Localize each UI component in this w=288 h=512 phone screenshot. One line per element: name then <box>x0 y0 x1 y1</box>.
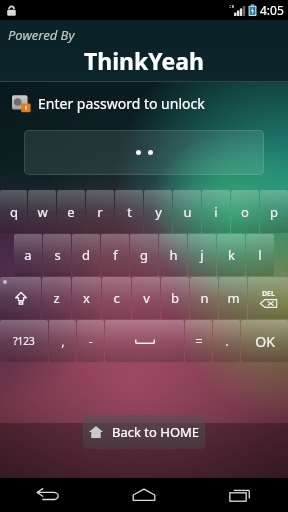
button[interactable]: Home <box>96 478 192 512</box>
button[interactable]: a <box>14 234 42 276</box>
button[interactable]: l <box>246 234 274 276</box>
staticText: p <box>270 203 278 221</box>
button[interactable] <box>0 277 41 319</box>
button[interactable]: j <box>188 234 216 276</box>
staticText: d <box>82 246 90 264</box>
button[interactable] <box>105 320 184 362</box>
button[interactable]: c <box>102 277 131 319</box>
button[interactable]: t <box>115 190 143 233</box>
staticText: v <box>143 289 150 307</box>
button[interactable]: s <box>43 234 71 276</box>
button[interactable]: Back to HOME <box>83 415 205 449</box>
staticText: = <box>195 332 203 350</box>
staticText: r <box>97 203 103 221</box>
button[interactable]: i <box>202 190 230 233</box>
button[interactable]: o <box>231 190 259 233</box>
staticText: n <box>200 289 209 307</box>
button[interactable]: v <box>132 277 160 319</box>
staticText: y <box>155 203 162 221</box>
button[interactable]: OK <box>241 320 288 362</box>
button[interactable]: b <box>161 277 189 319</box>
button[interactable]: p <box>260 190 288 233</box>
staticText: - <box>88 332 93 350</box>
button[interactable]: z <box>42 277 71 319</box>
staticText: t <box>127 203 132 221</box>
staticText: DEL <box>262 289 275 299</box>
button[interactable]: g <box>130 234 158 276</box>
button[interactable]: , <box>49 320 76 362</box>
button[interactable]: ?123 <box>0 320 48 362</box>
staticText: f <box>113 246 118 264</box>
staticText: i <box>214 203 218 221</box>
button[interactable]: k <box>217 234 245 276</box>
staticText: w <box>37 203 48 221</box>
staticText: . <box>225 332 229 350</box>
staticText: j <box>200 246 204 264</box>
staticText: u <box>183 203 192 221</box>
button[interactable]: - <box>77 320 104 362</box>
staticText: OK <box>255 332 275 351</box>
button[interactable]: m <box>219 277 247 319</box>
staticText: z <box>53 289 60 307</box>
staticText: l <box>258 246 262 264</box>
staticText: Enter password to unlock <box>38 94 205 113</box>
button[interactable]: . <box>213 320 240 362</box>
button[interactable]: x <box>72 277 101 319</box>
staticText: 4:05 <box>260 2 284 18</box>
button[interactable]: d <box>72 234 100 276</box>
button[interactable]: = <box>185 320 212 362</box>
staticText: m <box>227 289 240 307</box>
button[interactable]: Recent apps <box>192 478 288 512</box>
button[interactable] <box>24 130 264 175</box>
button[interactable]: Back <box>0 478 96 512</box>
staticText: c <box>113 289 120 307</box>
staticText: s <box>54 246 61 264</box>
staticText: q <box>10 203 18 221</box>
staticText: , <box>61 332 65 350</box>
staticText: g <box>140 246 148 264</box>
staticText: x <box>83 289 90 307</box>
button[interactable]: h <box>159 234 187 276</box>
staticText: a <box>24 246 32 264</box>
staticText: o <box>241 203 249 221</box>
staticText: ?123 <box>13 334 35 348</box>
staticText: k <box>228 246 235 264</box>
button[interactable]: DEL <box>248 277 288 319</box>
button[interactable]: n <box>190 277 218 319</box>
button[interactable]: e <box>57 190 85 233</box>
button[interactable]: f <box>101 234 129 276</box>
staticText: e <box>67 203 75 221</box>
button[interactable]: y <box>144 190 172 233</box>
button[interactable]: q <box>0 190 27 233</box>
button[interactable]: u <box>173 190 201 233</box>
button[interactable]: r <box>86 190 114 233</box>
staticText: Back to HOME <box>112 423 200 441</box>
staticText: Powered By <box>8 26 75 44</box>
staticText: b <box>171 289 179 307</box>
staticText: ThinkYeah <box>84 45 205 76</box>
button[interactable]: w <box>28 190 56 233</box>
staticText: h <box>169 246 178 264</box>
